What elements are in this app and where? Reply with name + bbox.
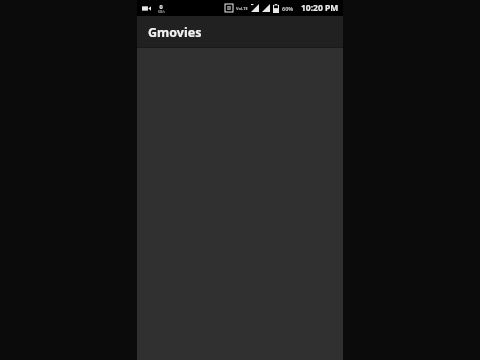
staticText: VoLTE bbox=[236, 6, 248, 11]
button[interactable]: Gmovies bbox=[137, 16, 343, 48]
staticText: 10:20 PM bbox=[301, 2, 339, 14]
staticText: 0 bbox=[159, 3, 163, 10]
staticText: KB/s bbox=[158, 10, 165, 14]
staticText: 60% bbox=[282, 5, 294, 12]
staticText: Gmovies bbox=[148, 24, 202, 41]
